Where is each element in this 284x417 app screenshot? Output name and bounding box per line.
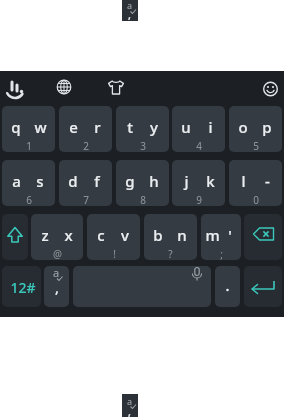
staticText: - [265, 171, 270, 191]
button[interactable]: e [59, 106, 112, 152]
staticText: ! [113, 247, 116, 260]
staticText: m [205, 225, 220, 245]
staticText: ? [168, 247, 173, 260]
button[interactable] [104, 76, 128, 100]
button[interactable]: z [31, 214, 83, 260]
staticText: , [128, 7, 132, 22]
button[interactable]: a [122, 0, 138, 21]
button[interactable]: d [59, 160, 112, 206]
button[interactable] [215, 266, 240, 307]
staticText: r [94, 117, 101, 137]
button[interactable] [4, 77, 30, 101]
button[interactable]: m [201, 214, 241, 260]
staticText: 7 [83, 193, 89, 206]
button[interactable]: a [122, 394, 138, 417]
button[interactable] [73, 266, 211, 307]
staticText: t [127, 117, 133, 137]
button[interactable]: g [116, 160, 169, 206]
staticText: v [121, 225, 129, 245]
staticText: y [150, 117, 158, 137]
button[interactable]: j [172, 160, 225, 206]
button[interactable]: b [144, 214, 197, 260]
staticText: 1 [26, 139, 32, 152]
staticText: x [64, 225, 73, 245]
staticText: ; [220, 247, 223, 260]
button[interactable]: l [229, 160, 282, 206]
staticText: 3 [140, 139, 146, 152]
staticText: a [127, 0, 133, 11]
staticText: , [128, 404, 132, 417]
staticText: e [69, 117, 78, 137]
staticText: ' [228, 225, 232, 245]
button[interactable]: a [2, 160, 55, 206]
button[interactable]: q [2, 106, 55, 152]
staticText: 8 [140, 193, 146, 206]
staticText: i [208, 117, 213, 137]
staticText: 2 [83, 139, 89, 152]
button[interactable]: a [44, 266, 69, 307]
staticText: 9 [196, 193, 202, 206]
button[interactable]: 12# [2, 266, 41, 307]
staticText: a [127, 395, 133, 407]
staticText: j [184, 171, 189, 191]
button[interactable] [244, 266, 282, 307]
button[interactable] [259, 77, 283, 101]
button[interactable]: c [87, 214, 140, 260]
staticText: f [94, 171, 100, 191]
staticText: o [238, 117, 248, 137]
staticText: l [241, 171, 246, 191]
staticText: u [181, 117, 191, 137]
staticText: 12# [10, 278, 36, 297]
staticText: s [36, 171, 44, 191]
staticText: w [34, 117, 47, 137]
staticText: k [206, 171, 215, 191]
staticText: h [149, 171, 159, 191]
button[interactable] [244, 214, 282, 260]
button[interactable] [2, 214, 28, 260]
staticText: 5 [253, 139, 259, 152]
button[interactable]: t [116, 106, 169, 152]
staticText: @ [53, 247, 62, 260]
staticText: b [153, 225, 163, 245]
staticText: z [41, 225, 49, 245]
staticText: c [97, 225, 105, 245]
staticText: 0 [253, 193, 259, 206]
button[interactable]: u [172, 106, 225, 152]
staticText: q [11, 117, 21, 137]
staticText: , [55, 278, 59, 297]
staticText: a [12, 171, 21, 191]
staticText: 4 [196, 139, 202, 152]
button[interactable]: o [229, 106, 282, 152]
staticText: n [177, 225, 187, 245]
staticText: a [53, 266, 60, 280]
staticText: g [125, 171, 135, 191]
staticText: 6 [26, 193, 32, 206]
button[interactable] [53, 76, 75, 100]
staticText: p [262, 117, 272, 137]
staticText: d [68, 171, 78, 191]
